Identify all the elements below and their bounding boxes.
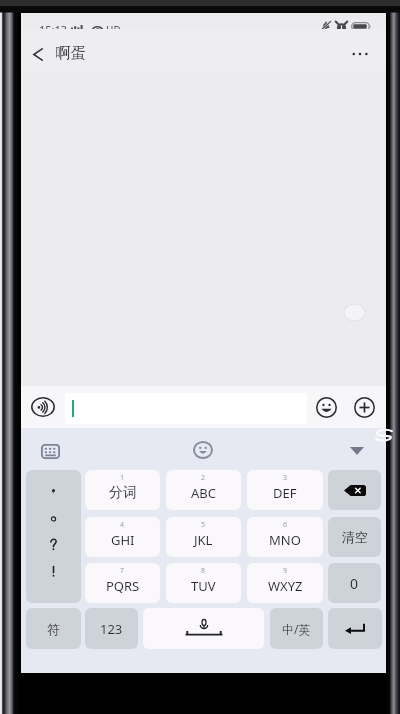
staticText: WXYZ bbox=[268, 577, 303, 595]
staticText: MNO bbox=[269, 531, 301, 549]
staticText: 2 bbox=[201, 473, 206, 483]
staticText: ABC bbox=[191, 484, 216, 502]
staticText: PQRS bbox=[106, 577, 140, 595]
staticText: HD bbox=[106, 23, 121, 37]
button[interactable]: 7 bbox=[85, 563, 160, 603]
button[interactable]: 0 bbox=[328, 563, 381, 603]
staticText: JKL bbox=[194, 531, 213, 549]
button[interactable]: Space bbox=[143, 608, 264, 649]
staticText: GHI bbox=[111, 531, 135, 549]
button[interactable]: 符 bbox=[26, 608, 81, 649]
button[interactable]: 6 bbox=[247, 517, 323, 557]
button[interactable]: 4 bbox=[85, 517, 160, 557]
staticText: 啊蛋 bbox=[56, 44, 86, 63]
button[interactable]: 5 bbox=[166, 517, 241, 557]
button[interactable]: Enter bbox=[328, 608, 382, 649]
button[interactable] bbox=[65, 393, 307, 424]
button[interactable]: Switch keyboard bbox=[36, 437, 64, 465]
staticText: 15:13 bbox=[39, 22, 68, 37]
button[interactable]: Back bbox=[24, 40, 52, 68]
staticText: 3 bbox=[283, 473, 288, 483]
button[interactable]: 2 bbox=[166, 470, 241, 510]
staticText: 123 bbox=[100, 620, 123, 638]
staticText: 分词 bbox=[109, 484, 137, 502]
staticText: 7 bbox=[120, 566, 125, 576]
button[interactable]: Backspace bbox=[328, 470, 381, 510]
staticText: 清空 bbox=[342, 529, 368, 545]
staticText: 符 bbox=[47, 621, 60, 637]
button[interactable]: More options bbox=[339, 44, 373, 64]
button[interactable]: Punctuation bbox=[26, 470, 81, 603]
staticText: DEF bbox=[273, 484, 297, 502]
button[interactable]: 中/英 bbox=[270, 608, 323, 649]
button[interactable]: 1 bbox=[85, 470, 160, 510]
staticText: 4 bbox=[120, 520, 125, 530]
staticText: 中/英 bbox=[282, 621, 311, 637]
button[interactable]: 9 bbox=[247, 563, 323, 603]
staticText: TUV bbox=[191, 577, 216, 595]
staticText: 1 bbox=[120, 473, 125, 483]
staticText: 8 bbox=[201, 566, 206, 576]
button[interactable]: More actions bbox=[352, 395, 376, 419]
button[interactable]: Emoji bbox=[314, 395, 338, 419]
staticText: 5 bbox=[201, 520, 206, 530]
button[interactable]: 清空 bbox=[328, 517, 381, 557]
button[interactable]: Voice input bbox=[30, 395, 56, 419]
staticText: 9 bbox=[283, 566, 288, 576]
button[interactable]: 3 bbox=[247, 470, 323, 510]
staticText: 6 bbox=[283, 520, 288, 530]
button[interactable]: Emoji bbox=[189, 436, 217, 464]
button[interactable]: 123 bbox=[85, 608, 138, 649]
button[interactable]: 8 bbox=[166, 563, 241, 603]
button[interactable]: Hide keyboard bbox=[343, 437, 371, 465]
staticText: 0 bbox=[350, 574, 359, 593]
